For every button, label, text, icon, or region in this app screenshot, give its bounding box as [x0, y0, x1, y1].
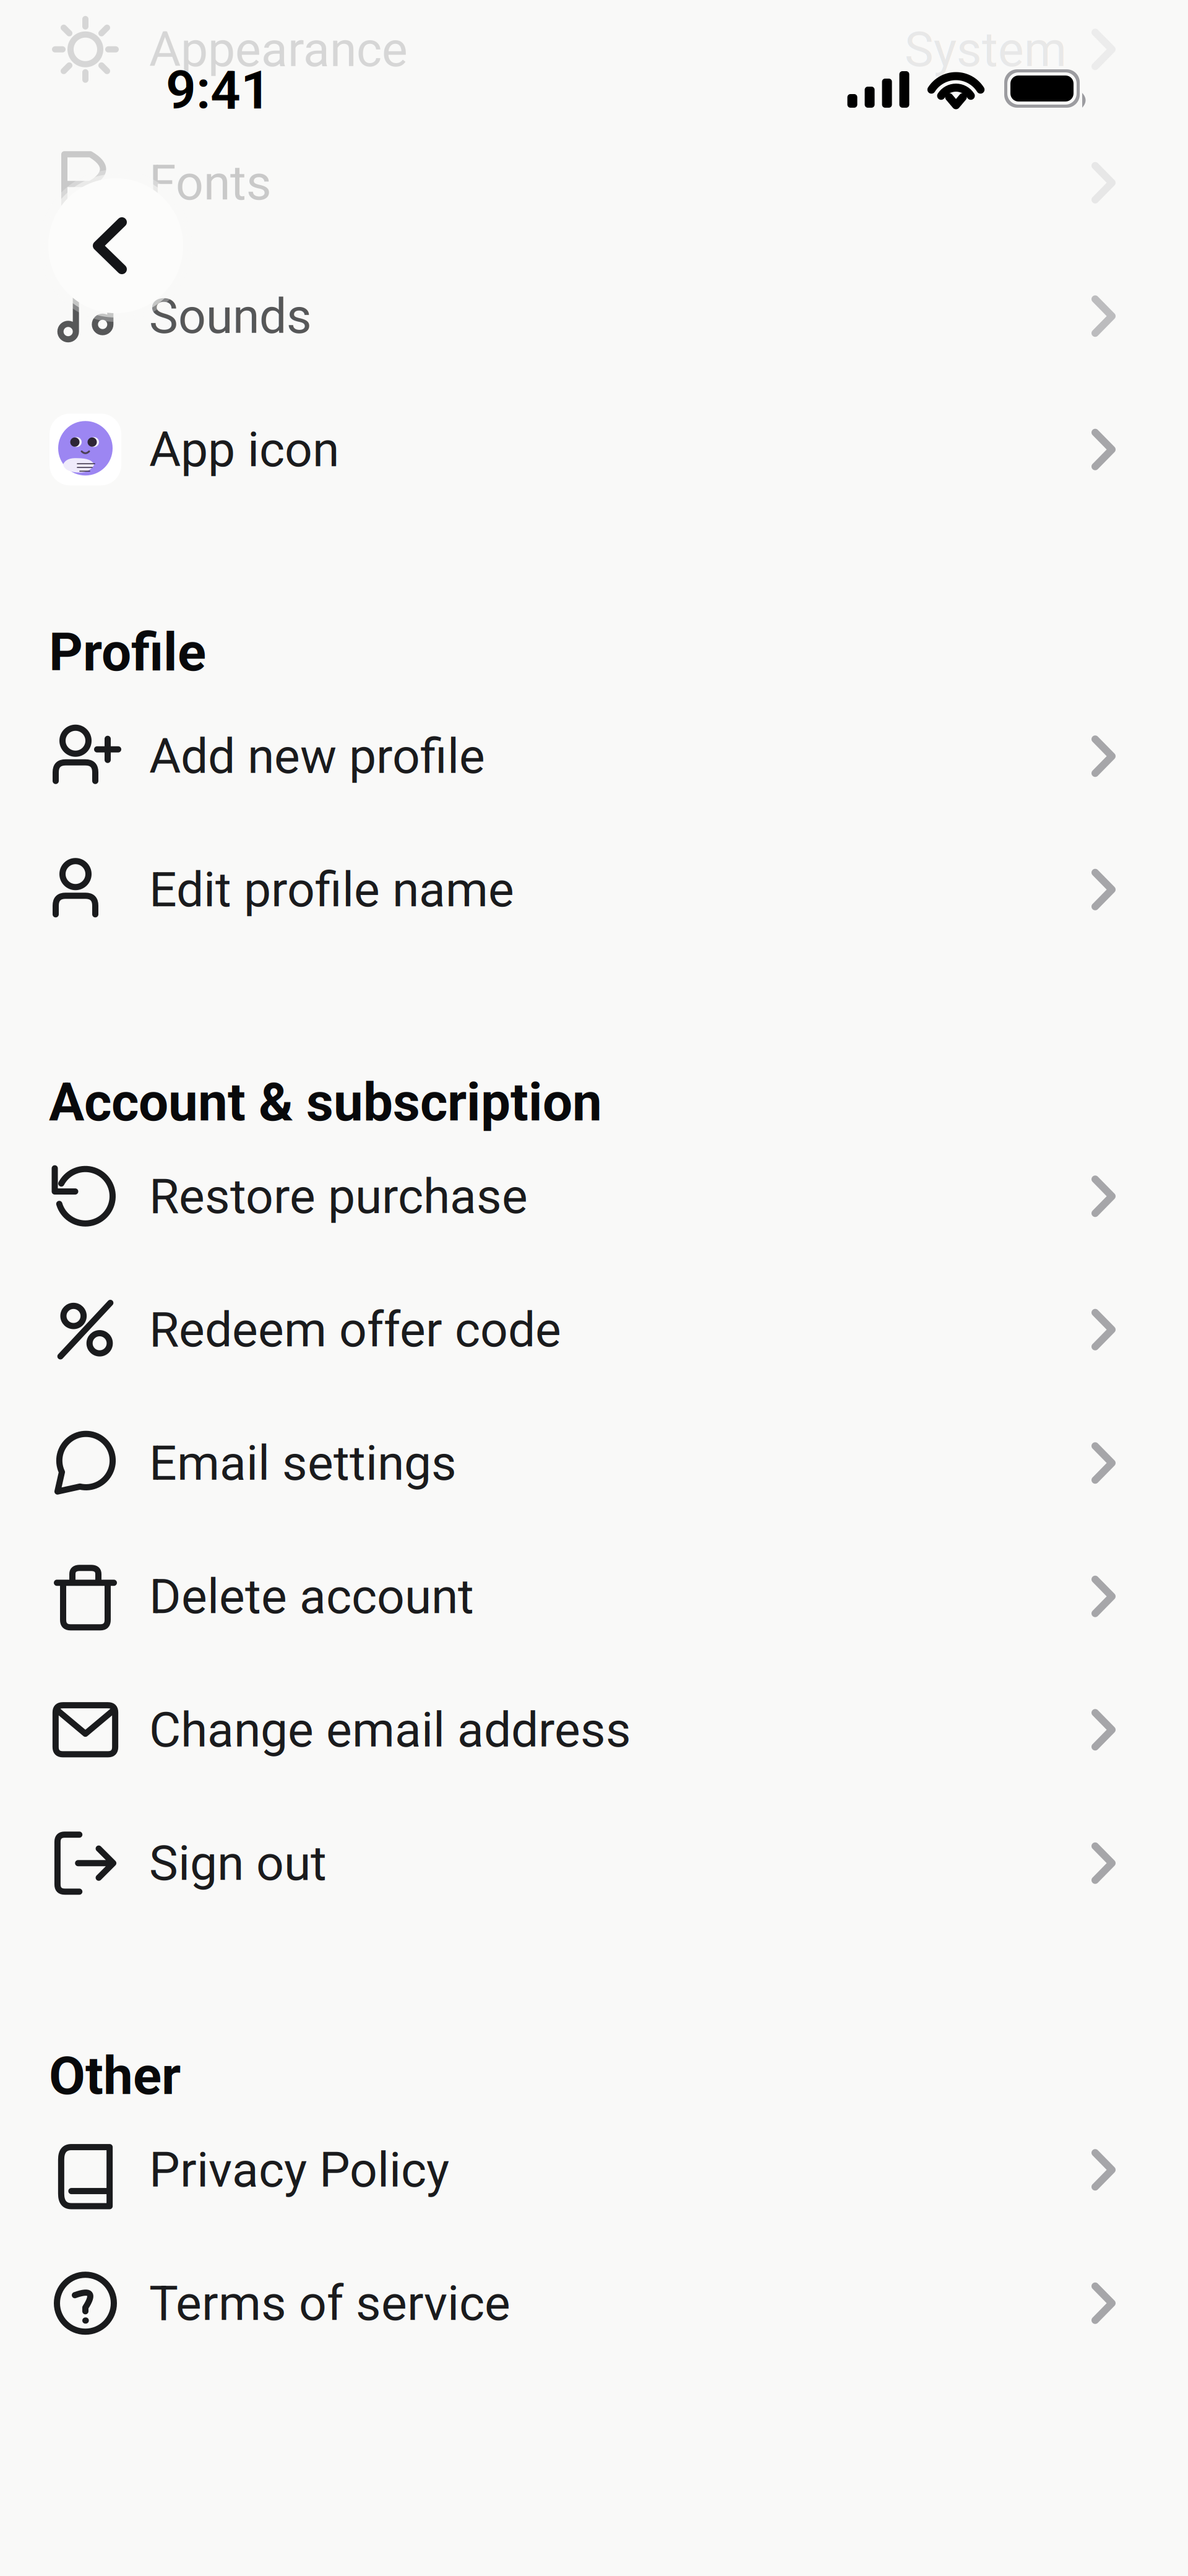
staticText: Email settings [149, 1435, 457, 1492]
button[interactable]: Redeem offer code [0, 1263, 1188, 1396]
staticText: Appearance [149, 21, 408, 78]
button[interactable]: Restore purchase [0, 1130, 1188, 1263]
staticText: Account & subscription [49, 1071, 602, 1133]
staticText: App icon [149, 421, 339, 478]
staticText: Edit profile name [149, 861, 514, 918]
button[interactable]: Privacy Policy [0, 2103, 1188, 2237]
button[interactable]: Terms of service [0, 2237, 1188, 2370]
button[interactable]: Edit profile name [0, 823, 1188, 956]
button[interactable]: Add new profile [0, 689, 1188, 823]
staticText: 9:41 [166, 59, 271, 121]
button[interactable]: Back [40, 170, 192, 322]
staticText: Redeem offer code [149, 1301, 561, 1358]
staticText: Other [49, 2045, 181, 2107]
staticText: Profile [49, 621, 206, 683]
staticText: Delete account [149, 1568, 474, 1625]
staticText: Fonts [149, 154, 272, 211]
button[interactable]: Email settings [0, 1396, 1188, 1530]
button[interactable]: Fonts [0, 116, 1188, 249]
staticText: Add new profile [149, 728, 485, 785]
staticText: Change email address [149, 1701, 631, 1758]
button[interactable]: Appearance [0, 0, 1188, 116]
staticText: Sign out [149, 1835, 327, 1892]
button[interactable]: Sounds [0, 249, 1188, 383]
button[interactable]: Change email address [0, 1663, 1188, 1796]
button[interactable]: Delete account [0, 1530, 1188, 1663]
staticText: System [905, 21, 1067, 78]
button[interactable]: App icon [0, 383, 1188, 516]
staticText: Terms of service [149, 2275, 510, 2332]
staticText: Restore purchase [149, 1168, 528, 1225]
button[interactable]: Sign out [0, 1796, 1188, 1930]
staticText: Sounds [149, 288, 312, 345]
staticText: Privacy Policy [149, 2141, 449, 2198]
